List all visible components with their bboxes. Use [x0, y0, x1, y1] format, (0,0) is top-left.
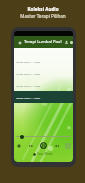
button[interactable]: Next [54, 143, 60, 149]
staticText: Terapi Verse 1 - Audio [16, 96, 41, 99]
button[interactable]: Shuffle [16, 143, 22, 149]
staticText: Terapi Verse 3 - Audio [16, 84, 41, 87]
button[interactable]: Terapi Verse 2 - Audio [14, 67, 73, 79]
button[interactable]: Menu [16, 39, 23, 46]
staticText: Terapi Verse 1 - Audio [16, 60, 41, 63]
button[interactable]: Settings [70, 38, 73, 46]
button[interactable]: Easy Mode [14, 152, 73, 156]
staticText: Easy Mode [37, 152, 54, 156]
button[interactable]: Terapi Verse 1 - Audio [14, 55, 73, 67]
staticText: Koleksi Audio [27, 6, 59, 12]
button[interactable]: Terapi Verse 1 - Audio [14, 91, 73, 103]
staticText: Master Terapi Pilihan [20, 13, 66, 19]
staticText: Terapi Lumbal Paul [24, 39, 62, 45]
button[interactable]: Terapi Verse 3 - Audio [14, 79, 73, 91]
button[interactable]: Account [62, 38, 70, 46]
button[interactable]: Previous [28, 143, 34, 149]
button[interactable]: Pause [39, 141, 48, 150]
staticText: Terapi Verse 2 - Audio [16, 72, 41, 75]
